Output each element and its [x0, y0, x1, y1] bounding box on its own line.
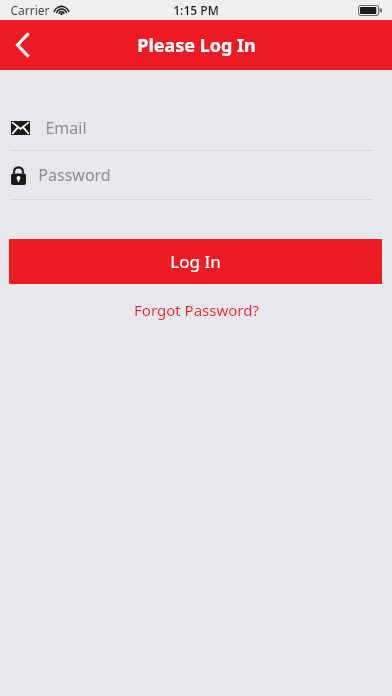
- button[interactable]: Forgot Password?: [0, 295, 392, 325]
- staticText: Password: [38, 164, 111, 186]
- staticText: Forgot Password?: [134, 300, 259, 320]
- staticText: Log In: [170, 250, 221, 273]
- staticText: Email: [45, 117, 87, 139]
- button[interactable]: Back: [0, 20, 46, 70]
- button[interactable]: Log In: [9, 239, 382, 284]
- staticText: 1:15 PM: [173, 2, 219, 18]
- button[interactable]: Password: [0, 151, 392, 199]
- button[interactable]: Email: [0, 105, 392, 150]
- staticText: Carrier: [10, 2, 50, 18]
- staticText: Please Log In: [137, 33, 256, 58]
